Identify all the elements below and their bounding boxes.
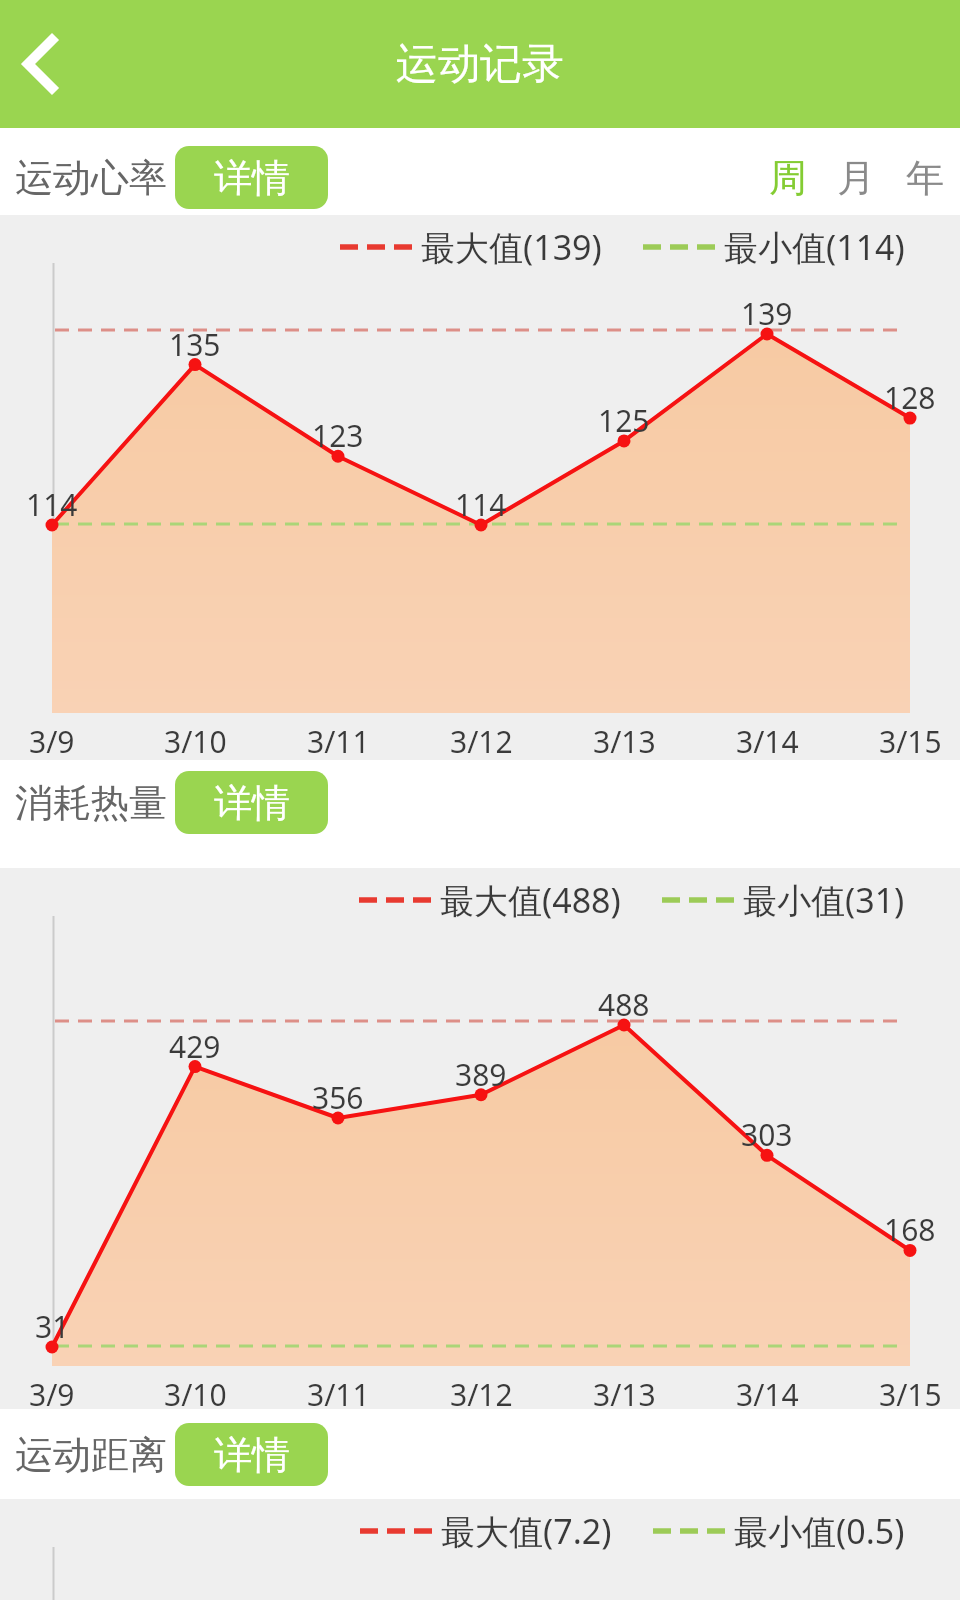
staticText: 123 — [312, 415, 364, 456]
button[interactable]: 周 — [769, 154, 807, 202]
staticText: 139 — [741, 293, 793, 334]
staticText: 3/14 — [736, 721, 799, 762]
staticText: 3/10 — [164, 721, 227, 762]
staticText: 最大值(7.2) — [441, 1508, 612, 1554]
staticText: 31 — [35, 1306, 70, 1347]
staticText: 488 — [598, 984, 650, 1025]
staticText: 135 — [169, 324, 221, 365]
staticText: 356 — [312, 1077, 364, 1118]
staticText: 125 — [598, 400, 650, 441]
staticText: 详情 — [214, 154, 290, 202]
staticText: 3/12 — [450, 721, 513, 762]
staticText: 429 — [169, 1026, 221, 1067]
staticText: 最小值(31) — [743, 877, 905, 923]
staticText: 3/9 — [29, 721, 75, 762]
staticText: 3/14 — [736, 1374, 799, 1415]
staticText: 389 — [455, 1054, 507, 1095]
staticText: 最大值(488) — [440, 877, 621, 923]
staticText: 303 — [741, 1114, 793, 1155]
staticText: 3/15 — [879, 1374, 942, 1415]
staticText: 详情 — [214, 779, 290, 827]
staticText: 3/13 — [593, 1374, 656, 1415]
staticText: 最小值(114) — [724, 224, 905, 270]
button[interactable] — [0, 0, 80, 128]
staticText: 3/12 — [450, 1374, 513, 1415]
staticText: 运动记录 — [396, 38, 564, 91]
staticText: 114 — [455, 484, 507, 525]
staticText: 消耗热量 — [15, 779, 167, 827]
staticText: 114 — [26, 484, 78, 525]
button[interactable]: 详情 — [175, 1423, 328, 1486]
staticText: 最大值(139) — [421, 224, 602, 270]
staticText: 3/15 — [879, 721, 942, 762]
staticText: 128 — [884, 377, 936, 418]
staticText: 运动距离 — [15, 1431, 167, 1479]
staticText: 3/11 — [307, 721, 370, 762]
staticText: 168 — [884, 1209, 936, 1250]
staticText: 3/9 — [29, 1374, 75, 1415]
staticText: 3/11 — [307, 1374, 370, 1415]
button[interactable]: 月 — [837, 154, 875, 202]
staticText: 最小值(0.5) — [734, 1508, 905, 1554]
staticText: 3/13 — [593, 721, 656, 762]
button[interactable]: 年 — [906, 154, 944, 202]
button[interactable]: 详情 — [175, 771, 328, 834]
button[interactable]: 详情 — [175, 146, 328, 209]
staticText: 运动心率 — [15, 154, 167, 202]
staticText: 3/10 — [164, 1374, 227, 1415]
staticText: 详情 — [214, 1431, 290, 1479]
